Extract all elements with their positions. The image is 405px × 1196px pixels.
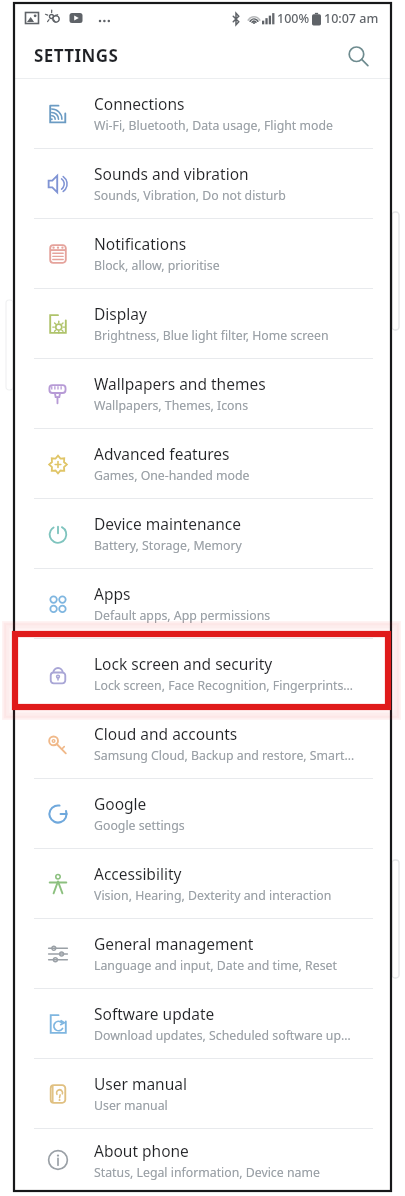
staticText: Device maintenance (94, 513, 241, 534)
button[interactable]: User manual (14, 1059, 391, 1128)
staticText: SETTINGS (34, 44, 119, 67)
staticText: Google (94, 793, 147, 814)
button[interactable]: Google (14, 779, 391, 848)
staticText: Battery, Storage, Memory (94, 537, 242, 554)
button[interactable]: Lock screen and security (14, 639, 391, 708)
staticText: Notifications (94, 233, 187, 254)
button[interactable]: Advanced features (14, 429, 391, 498)
staticText: Block, allow, prioritise (94, 257, 220, 274)
staticText: Sounds, Vibration, Do not disturb (94, 187, 286, 204)
staticText: Cloud and accounts (94, 723, 238, 744)
button[interactable]: Display (14, 289, 391, 358)
staticText: Language and input, Date and time, Reset (94, 957, 337, 974)
button[interactable]: Software update (14, 989, 391, 1058)
staticText: Advanced features (94, 443, 230, 464)
staticText: Games, One-handed mode (94, 467, 250, 484)
button[interactable]: Device maintenance (14, 499, 391, 568)
button[interactable]: Sounds and vibration (14, 149, 391, 218)
button[interactable]: Search (341, 39, 375, 73)
staticText: User manual (94, 1073, 187, 1094)
button[interactable]: Connections (14, 79, 391, 148)
staticText: Vision, Hearing, Dexterity and interacti… (94, 887, 332, 904)
staticText: Download updates, Scheduled software up… (94, 1027, 351, 1044)
button[interactable]: General management (14, 919, 391, 988)
staticText: 100% (277, 10, 310, 27)
staticText: Wallpapers and themes (94, 373, 266, 394)
staticText: Samsung Cloud, Backup and restore, Smart… (94, 747, 355, 764)
staticText: Wi-Fi, Bluetooth, Data usage, Flight mod… (94, 117, 333, 134)
staticText: Display (94, 303, 147, 324)
staticText: Lock screen, Face Recognition, Fingerpri… (94, 677, 354, 694)
staticText: User manual (94, 1097, 168, 1114)
staticText: Apps (94, 583, 131, 604)
staticText: Sounds and vibration (94, 163, 249, 184)
staticText: Wallpapers, Themes, Icons (94, 397, 249, 414)
button[interactable]: Accessibility (14, 849, 391, 918)
staticText: 10:07 am (324, 10, 379, 27)
staticText: Google settings (94, 817, 185, 834)
button[interactable]: Apps (14, 569, 391, 638)
staticText: Status, Legal information, Device name (94, 1164, 320, 1181)
staticText: Lock screen and security (94, 653, 273, 674)
staticText: Software update (94, 1003, 215, 1024)
button[interactable]: Notifications (14, 219, 391, 288)
staticText: General management (94, 933, 254, 954)
staticText: Accessibility (94, 863, 182, 884)
button[interactable]: Cloud and accounts (14, 709, 391, 778)
button[interactable]: About phone (14, 1129, 391, 1191)
staticText: Connections (94, 93, 185, 114)
button[interactable]: Wallpapers and themes (14, 359, 391, 428)
staticText: Brightness, Blue light filter, Home scre… (94, 327, 329, 344)
staticText: Default apps, App permissions (94, 607, 271, 624)
staticText: About phone (94, 1140, 189, 1161)
